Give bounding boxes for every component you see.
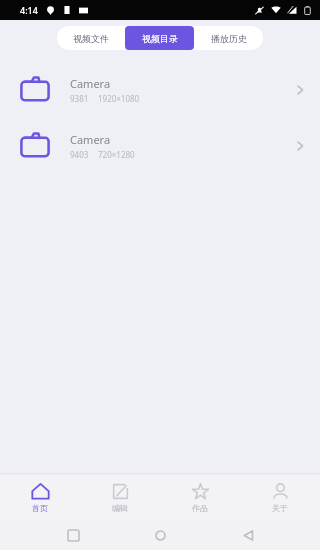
staticText: 关于: [272, 503, 288, 513]
button[interactable]: 视频文件: [57, 26, 125, 50]
staticText: 播放历史: [211, 33, 247, 44]
staticText: 作品: [192, 503, 208, 513]
button[interactable]: 关于: [240, 474, 320, 520]
button[interactable]: 播放历史: [194, 26, 263, 50]
button[interactable]: Recents: [58, 520, 88, 550]
button[interactable]: Back: [233, 520, 263, 550]
staticText: 4:14: [20, 4, 38, 16]
button[interactable]: Home: [145, 520, 175, 550]
staticText: 9403: [70, 149, 89, 160]
button[interactable]: 作品: [160, 474, 240, 520]
staticText: 9381: [70, 93, 89, 104]
staticText: Camera: [70, 76, 111, 91]
staticText: 视频目录: [142, 33, 178, 44]
button[interactable]: Camera: [0, 118, 320, 174]
staticText: 视频文件: [73, 33, 109, 44]
button[interactable]: Camera: [0, 62, 320, 118]
staticText: 720×1280: [98, 149, 135, 160]
staticText: 首页: [32, 503, 48, 513]
button[interactable]: 首页: [0, 474, 80, 520]
staticText: 1920×1080: [98, 93, 140, 104]
staticText: Camera: [70, 132, 111, 147]
button[interactable]: 视频目录: [125, 26, 194, 50]
button[interactable]: 编辑: [80, 474, 160, 520]
staticText: 编辑: [112, 503, 128, 513]
